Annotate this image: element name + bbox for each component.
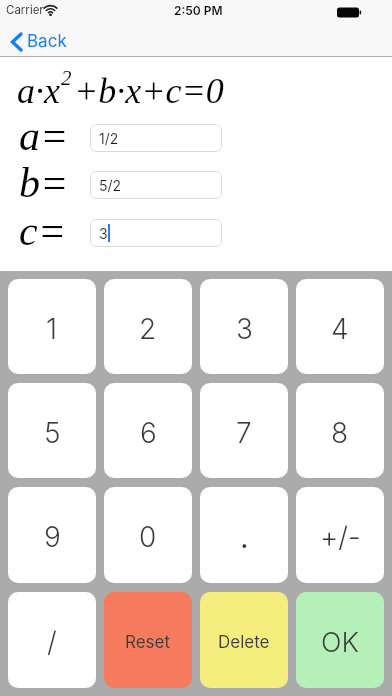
staticText: Reset [125,632,171,653]
button[interactable]: 1 [8,279,96,374]
button[interactable]: 3 [200,279,288,374]
staticText: / [47,625,57,659]
button[interactable]: 0 [104,487,192,583]
button[interactable]: 9 [8,487,96,583]
button[interactable]: 8 [296,383,384,478]
staticText: OK [321,626,359,659]
button[interactable]: 2 [104,279,192,374]
staticText: b= [19,160,69,207]
staticText: . [240,519,249,555]
button[interactable]: +/- [296,487,384,583]
staticText: 6 [140,416,157,450]
staticText: +/- [320,520,361,554]
staticText: 2 [61,66,72,89]
staticText: 4 [331,312,349,346]
button[interactable]: / [8,592,96,688]
staticText: Delete [218,632,270,653]
staticText: Back [27,31,67,52]
staticText: 1 [46,312,58,346]
staticText: 5 [44,416,61,450]
staticText: 5/2 [99,177,122,194]
button[interactable]: Reset [104,592,192,688]
staticText: 3 [236,312,253,346]
button[interactable]: Delete [200,592,288,688]
staticText: +b·x+c=0 [74,71,224,111]
button[interactable]: 7 [200,383,288,478]
button[interactable]: . [200,487,288,583]
staticText: 9 [44,520,61,554]
button[interactable]: 1/2 [90,124,222,152]
button[interactable]: 5 [8,383,96,478]
button[interactable]: 5/2 [90,171,222,199]
staticText: 2:50 PM [174,3,223,18]
button[interactable]: 4 [296,279,384,374]
staticText: Carrier [6,3,44,17]
staticText: 2 [139,312,157,346]
staticText: 8 [331,416,349,450]
button[interactable]: 3 [90,219,222,247]
staticText: a·x [17,71,60,111]
button[interactable]: 6 [104,383,192,478]
staticText: 1/2 [99,130,119,147]
staticText: 3 [99,225,108,242]
staticText: 0 [139,520,157,554]
staticText: 7 [236,416,252,450]
button[interactable]: Back [10,31,67,52]
staticText: a= [19,113,69,160]
button[interactable]: OK [296,592,384,688]
staticText: c= [19,208,66,255]
